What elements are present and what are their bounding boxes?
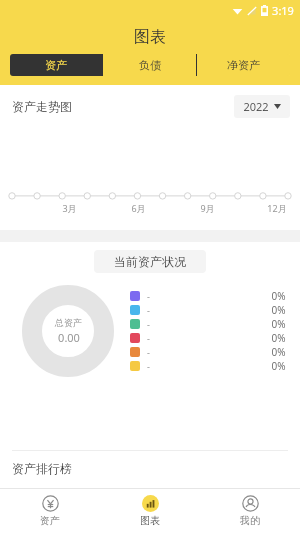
button[interactable]: 2022: [234, 95, 290, 118]
staticText: 0%: [271, 331, 286, 345]
staticText: 2022: [243, 99, 269, 114]
button[interactable]: 资产: [10, 54, 102, 76]
staticText: -: [147, 360, 150, 372]
staticText: 0%: [271, 345, 286, 359]
button[interactable]: 图表: [100, 489, 200, 533]
staticText: 资产排行榜: [12, 461, 72, 476]
staticText: 我的: [240, 514, 260, 527]
staticText: -: [147, 346, 150, 358]
button[interactable]: 资产: [0, 489, 100, 533]
staticText: -: [147, 332, 150, 344]
staticText: -: [147, 318, 150, 330]
staticText: 资产走势图: [12, 99, 72, 114]
staticText: -: [147, 290, 150, 302]
button[interactable]: 负债: [103, 54, 196, 76]
staticText: 12月: [267, 202, 287, 214]
staticText: 总资产: [55, 317, 82, 328]
staticText: 0%: [271, 289, 286, 303]
button[interactable]: 净资产: [197, 54, 290, 76]
staticText: 图表: [140, 514, 160, 527]
staticText: 0%: [271, 317, 286, 331]
staticText: 0.00: [58, 330, 80, 345]
staticText: -: [147, 304, 150, 316]
staticText: 3月: [62, 202, 77, 214]
staticText: 6月: [131, 202, 146, 214]
staticText: 0%: [271, 303, 286, 317]
staticText: 资产: [40, 514, 60, 527]
staticText: 3:19: [272, 3, 294, 18]
staticText: 负债: [139, 58, 161, 72]
staticText: 0%: [271, 359, 286, 373]
staticText: 9月: [200, 202, 215, 214]
staticText: 当前资产状况: [114, 254, 186, 269]
staticText: 图表: [134, 27, 166, 47]
staticText: 资产: [45, 58, 67, 72]
staticText: 净资产: [227, 58, 260, 72]
button[interactable]: 我的: [200, 489, 300, 533]
